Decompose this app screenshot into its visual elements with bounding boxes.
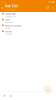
staticText: Task Edit — [5, 4, 18, 8]
staticText: ‹ — [1, 4, 3, 11]
button[interactable]: Search — [46, 4, 50, 10]
staticText: ▶ — [4, 94, 6, 97]
staticText: 9:41 — [2, 1, 6, 3]
button[interactable]: Swipe — [0, 30, 56, 36]
button[interactable]: Wait — [0, 18, 56, 24]
staticText: Level 30 — [5, 27, 11, 30]
button[interactable]: Add step — [43, 85, 52, 94]
staticText: Tap Play Store — [5, 15, 16, 18]
staticText: 3 Seconds — [5, 21, 13, 24]
staticText: Setup details — [5, 8, 18, 11]
staticText: Launch app — [5, 12, 15, 15]
button[interactable]: Launch app — [0, 12, 56, 18]
button[interactable]: Relative Volume — [0, 24, 56, 30]
staticText: + — [47, 87, 49, 93]
staticText: Relative Volume — [5, 24, 21, 27]
staticText: Wait — [5, 18, 10, 21]
button[interactable]: More options — [51, 4, 54, 10]
staticText: Up 200 px — [5, 33, 12, 35]
button[interactable]: Back — [1, 4, 4, 10]
button[interactable]: Run task — [3, 94, 6, 97]
button[interactable]: Task list — [9, 94, 12, 97]
staticText: Swipe — [5, 30, 11, 33]
staticText: ▤ — [9, 94, 11, 97]
